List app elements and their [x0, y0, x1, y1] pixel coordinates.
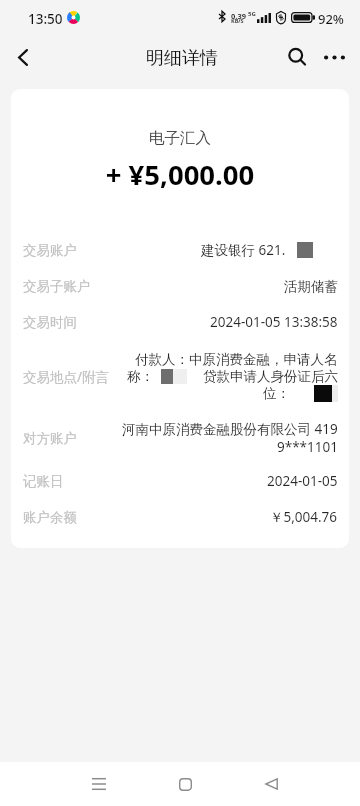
staticText: 13:50 — [28, 10, 63, 28]
staticText: 对方账户 — [23, 430, 119, 447]
button[interactable]: More options — [312, 35, 356, 79]
staticText: 位： — [263, 385, 290, 402]
staticText: 活期储蓄 — [284, 278, 338, 295]
button[interactable]: Back — [249, 762, 293, 806]
staticText: 2024-01-05 13:38:58 — [210, 313, 338, 331]
staticText: 河南中原消费金融股份有限公司 419 — [122, 420, 338, 438]
staticText: 0.39 — [231, 11, 246, 21]
staticText: 称： — [127, 368, 154, 385]
staticText: 明细详情 — [146, 47, 218, 70]
staticText: ￥5,004.76 — [270, 508, 338, 526]
staticText: 账户余额 — [23, 509, 119, 526]
staticText: 交易子账户 — [23, 278, 119, 295]
staticText: 9***1101 — [277, 438, 338, 456]
staticText: 记账日 — [23, 473, 119, 490]
button[interactable]: Home — [163, 762, 207, 806]
staticText: 建设银行 621. — [201, 241, 286, 259]
staticText: + ¥5,000.00 — [11, 156, 349, 193]
staticText: 5G — [248, 10, 256, 18]
button[interactable]: Recents — [77, 762, 121, 806]
staticText: 交易地点/附言 — [23, 368, 119, 386]
staticText: 电子汇入 — [11, 128, 349, 148]
staticText: 92% — [318, 10, 344, 28]
staticText: 2024-01-05 — [267, 472, 338, 490]
staticText: KB/S — [231, 17, 244, 24]
staticText: 交易时间 — [23, 314, 119, 331]
staticText: 付款人：中原消费金融，申请人名 — [135, 351, 338, 368]
button[interactable]: Back — [1, 35, 45, 79]
staticText: 交易账户 — [23, 242, 119, 259]
button[interactable]: Search — [276, 36, 320, 80]
staticText: 贷款申请人身份证后六 — [203, 368, 338, 385]
